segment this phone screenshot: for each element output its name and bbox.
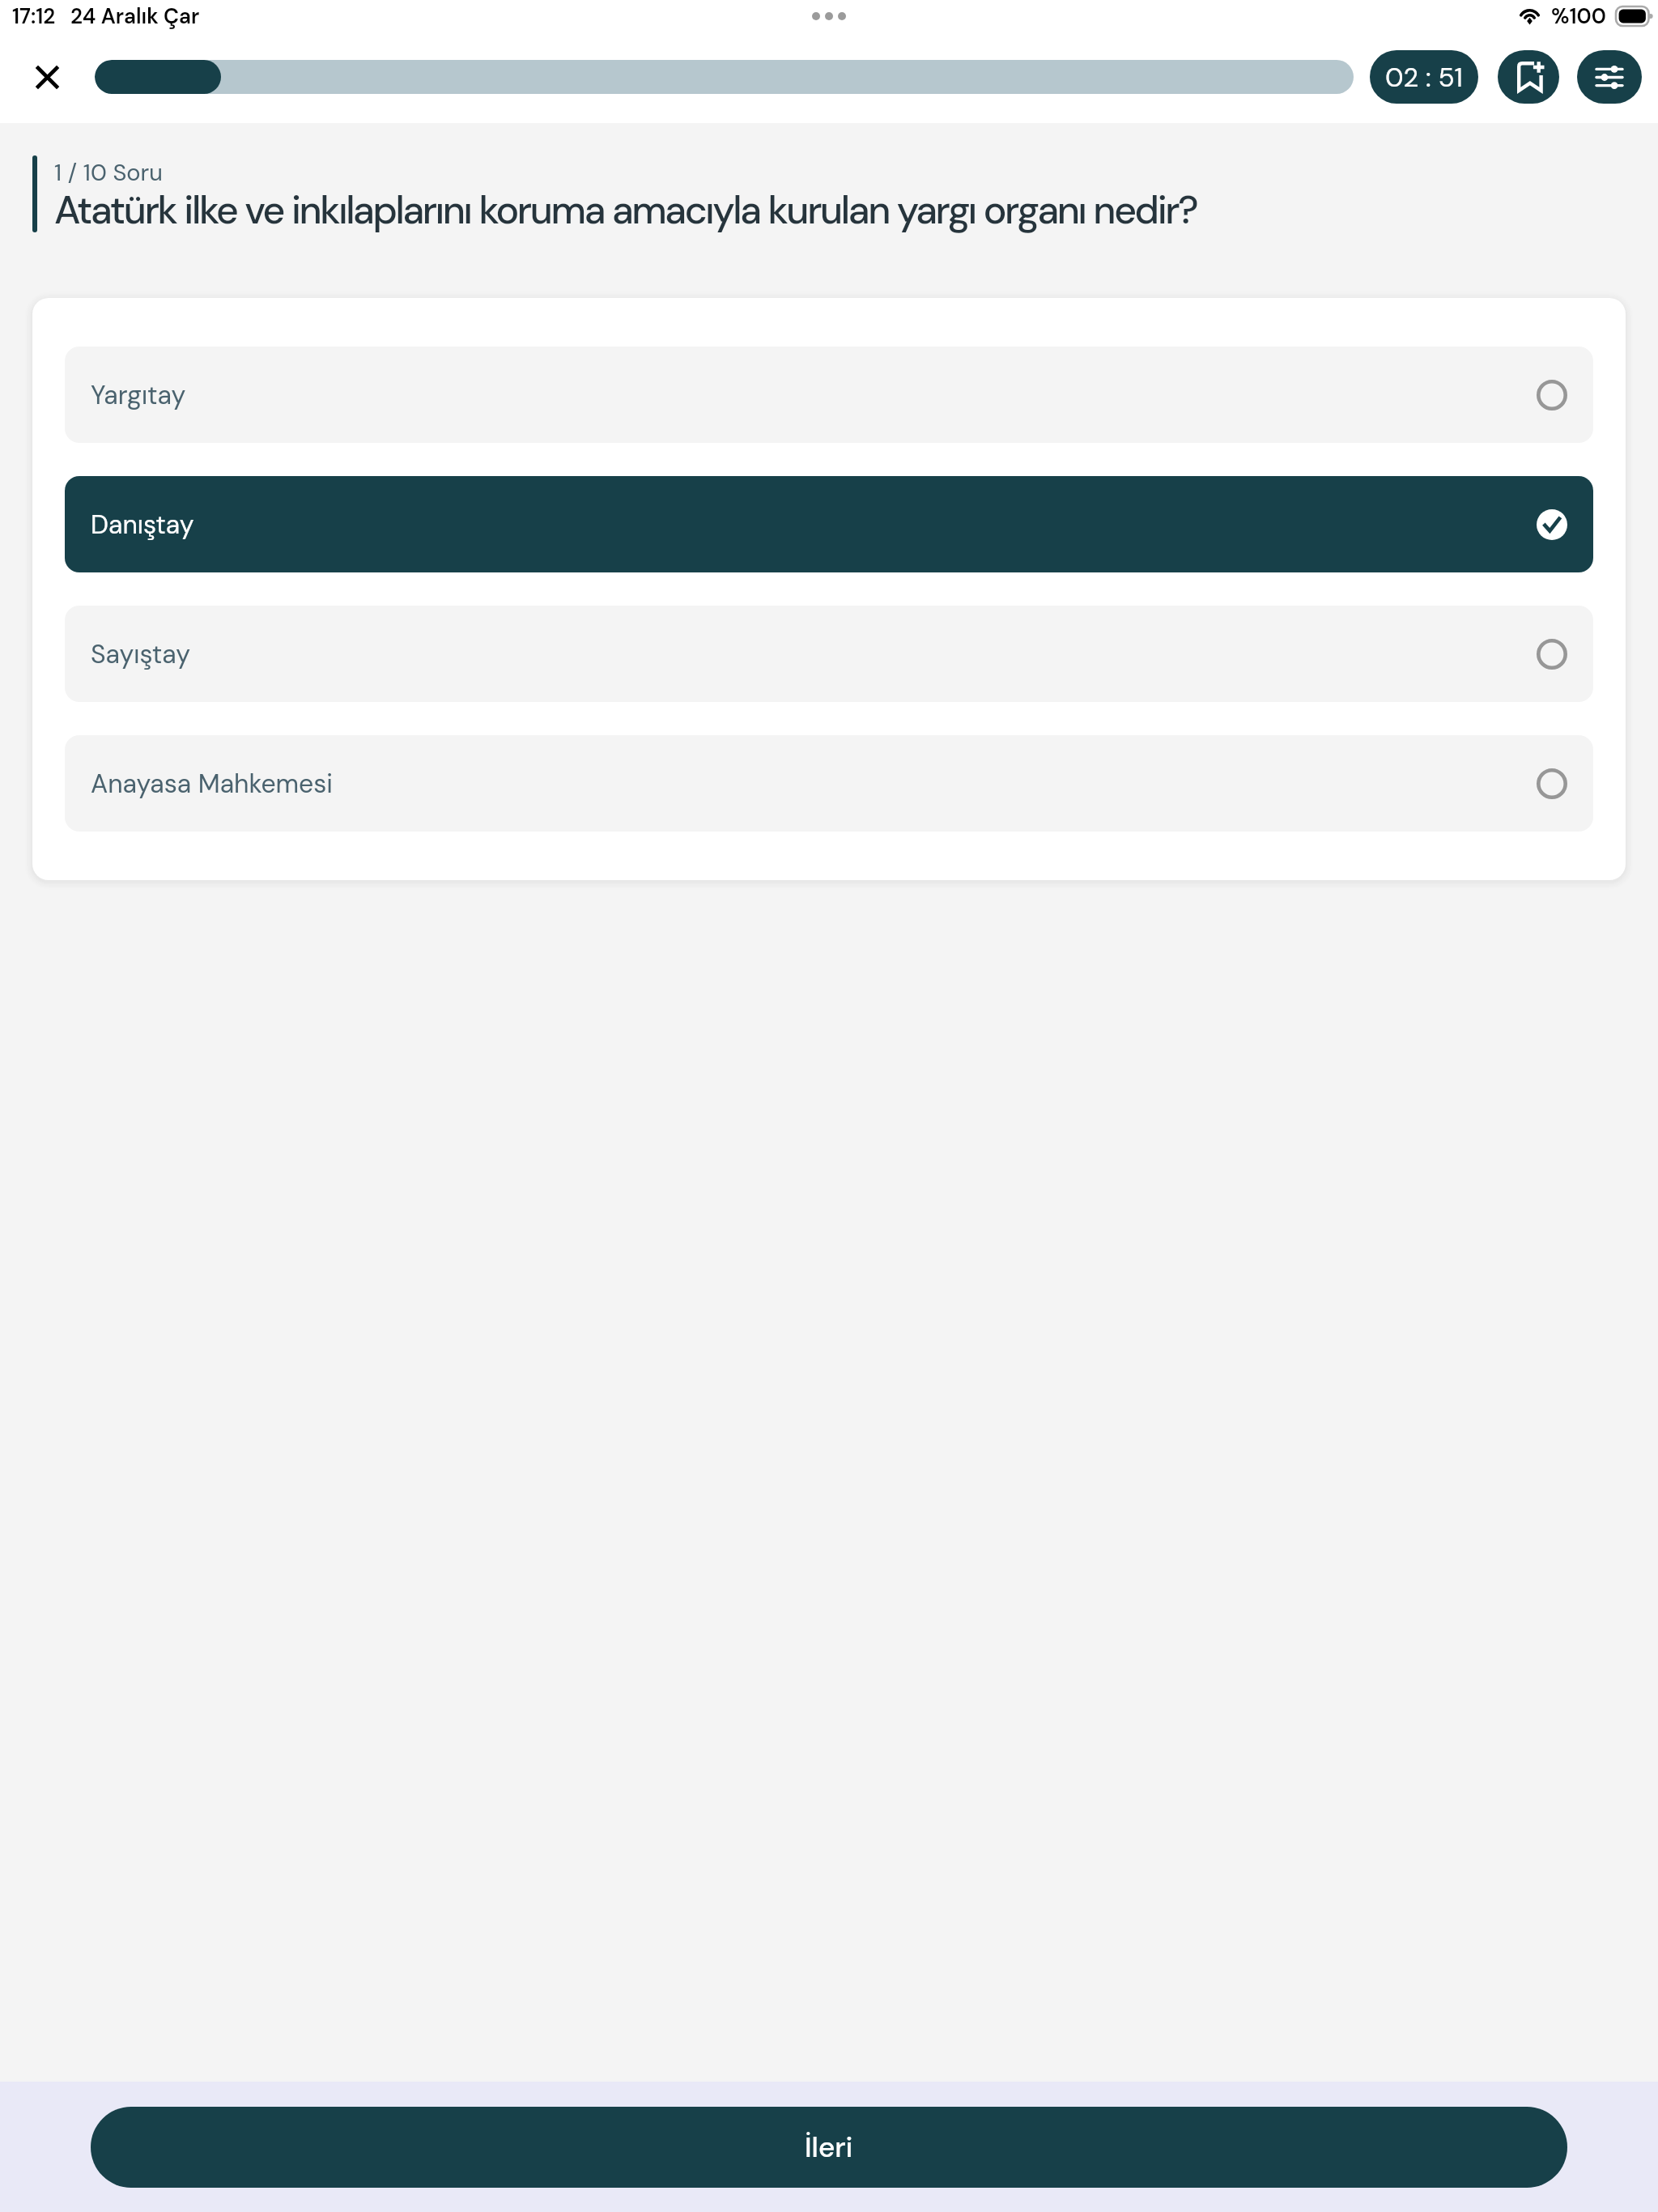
staticText: İleri [805, 2129, 853, 2166]
button[interactable]: İleri [91, 2107, 1567, 2188]
staticText: 24 Aralık Çar [70, 2, 200, 30]
button[interactable]: Kaydet [1498, 50, 1559, 104]
button[interactable]: Anayasa Mahkemesi [65, 735, 1593, 832]
staticText: Atatürk ilke ve inkılaplarını koruma ama… [54, 185, 1197, 235]
button[interactable]: Yargıtay [65, 347, 1593, 443]
staticText: %100 [1551, 2, 1606, 30]
staticText: 1 / 10 Soru [54, 157, 163, 188]
button[interactable]: Sayıştay [65, 606, 1593, 702]
staticText: 02 : 51 [1385, 60, 1463, 95]
button[interactable]: Kapat [16, 46, 78, 108]
staticText: Sayıştay [91, 637, 191, 671]
staticText: Danıştay [91, 508, 194, 542]
staticText: Yargıtay [91, 378, 186, 412]
staticText: 17:12 [12, 2, 56, 30]
button[interactable]: Ayarlar [1577, 50, 1642, 104]
button[interactable]: Danıştay [65, 476, 1593, 572]
button[interactable]: 02 : 51 [1370, 50, 1478, 104]
staticText: Anayasa Mahkemesi [91, 767, 334, 801]
